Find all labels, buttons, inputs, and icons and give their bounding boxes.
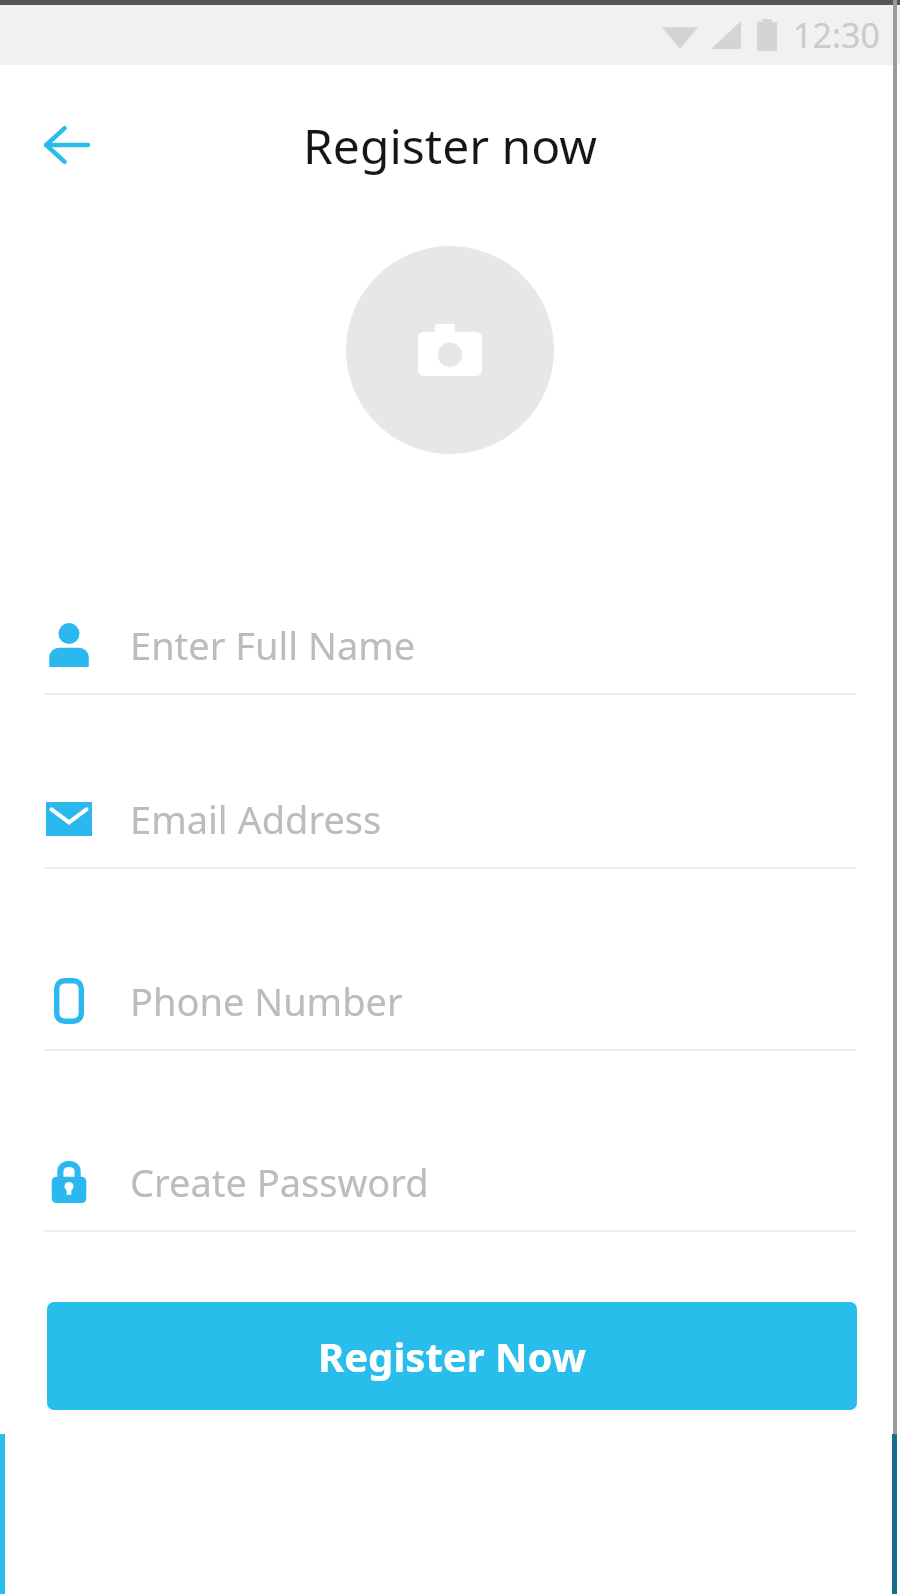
staticText: Email Address bbox=[130, 793, 382, 845]
button[interactable]: Phone Number bbox=[0, 953, 900, 1051]
staticText: Enter Full Name bbox=[130, 619, 416, 671]
button[interactable]: Enter Full Name bbox=[0, 597, 900, 695]
staticText: Register Now bbox=[318, 1329, 586, 1383]
staticText: Register now bbox=[0, 113, 900, 178]
staticText: 12:30 bbox=[793, 12, 880, 58]
button[interactable]: Back bbox=[24, 103, 108, 187]
button[interactable]: Register Now bbox=[47, 1302, 857, 1410]
button[interactable]: Email Address bbox=[0, 771, 900, 869]
button[interactable]: Create Password bbox=[0, 1134, 900, 1232]
staticText: Create Password bbox=[130, 1156, 429, 1208]
button[interactable]: Add profile photo bbox=[346, 246, 554, 454]
staticText: Phone Number bbox=[130, 975, 403, 1027]
